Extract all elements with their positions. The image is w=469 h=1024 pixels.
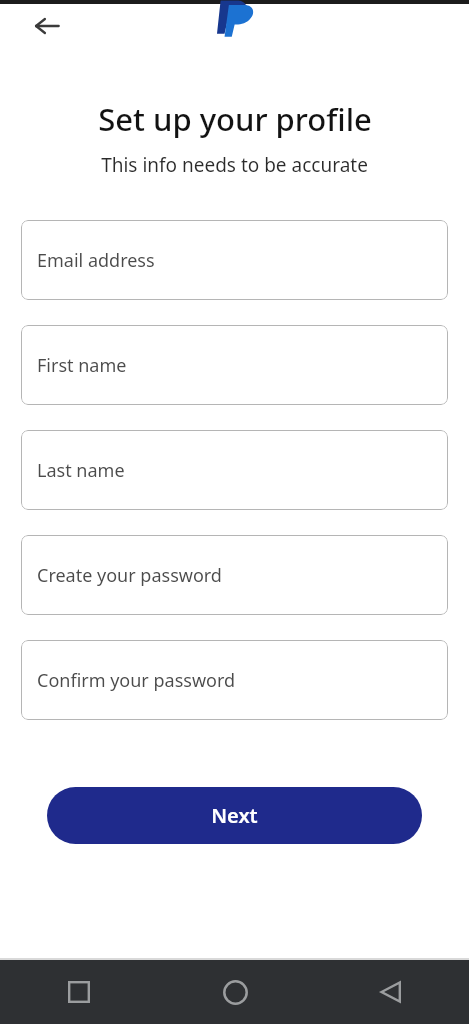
button[interactable]: Email address [21, 220, 448, 300]
staticText: Create your password [37, 563, 222, 588]
button[interactable]: Recent apps [0, 960, 157, 1024]
staticText: Confirm your password [37, 668, 236, 693]
button[interactable]: Back [24, 4, 70, 48]
staticText: Last name [37, 458, 125, 483]
button[interactable]: Back [313, 960, 469, 1024]
staticText: This info needs to be accurate [101, 152, 368, 178]
staticText: First name [37, 353, 127, 378]
button[interactable]: Next [47, 787, 422, 844]
staticText: Email address [37, 248, 155, 273]
button[interactable]: Last name [21, 430, 448, 510]
staticText: Set up your profile [98, 98, 372, 140]
button[interactable]: Confirm your password [21, 640, 448, 720]
button[interactable]: Home [157, 960, 313, 1024]
button[interactable]: First name [21, 325, 448, 405]
staticText: Next [211, 802, 258, 829]
button[interactable]: Create your password [21, 535, 448, 615]
